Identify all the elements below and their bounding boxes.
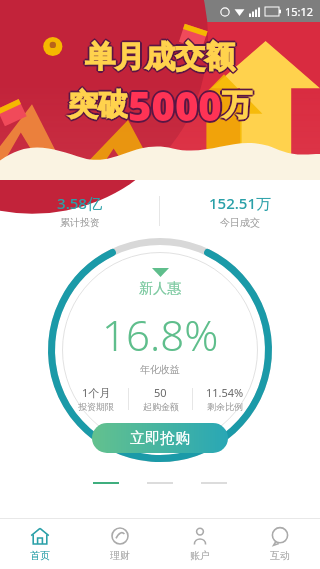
staticText: 5000	[128, 80, 222, 134]
staticText: 万	[222, 88, 252, 126]
staticText: 突破	[67, 85, 127, 123]
staticText: 5000	[128, 78, 222, 132]
staticText: 单月成交额	[85, 36, 235, 74]
staticText: 突破	[67, 87, 127, 125]
button[interactable]: 首页	[0, 519, 80, 569]
staticText: 单月成交额	[84, 39, 234, 77]
staticText: 起购金额	[143, 401, 179, 412]
staticText: 新人惠	[139, 280, 181, 298]
staticText: 理财	[110, 549, 130, 562]
staticText: 万	[223, 85, 253, 123]
staticText: 15:12	[285, 4, 314, 19]
staticText: 5000	[127, 77, 221, 131]
staticText: 突破	[68, 84, 128, 122]
staticText: 16.8%	[102, 306, 219, 363]
staticText: 突破	[70, 86, 130, 124]
staticText: 万	[222, 86, 252, 124]
staticText: 11.54%	[206, 385, 244, 400]
staticText: 互动	[270, 549, 290, 562]
staticText: 5000	[129, 77, 223, 131]
staticText: 5000	[127, 79, 221, 133]
staticText: 单月成交额	[87, 38, 237, 76]
staticText: 5000	[130, 78, 224, 132]
staticText: 突破	[69, 87, 129, 125]
staticText: 单月成交额	[85, 40, 235, 78]
staticText: 突破	[66, 86, 126, 124]
button[interactable]: 单月成交额	[0, 22, 320, 180]
staticText: 152.51万	[209, 193, 271, 213]
staticText: 万	[222, 84, 252, 122]
staticText: 5000	[128, 76, 222, 130]
staticText: 3.58亿	[57, 193, 102, 213]
button[interactable]: 立即抢购	[92, 423, 228, 453]
staticText: 万	[223, 87, 253, 125]
button[interactable]: 新人惠	[46, 236, 274, 464]
staticText: 单月成交额	[85, 38, 235, 76]
staticText: 立即抢购	[130, 429, 190, 448]
staticText: 单月成交额	[84, 37, 234, 75]
staticText: 万	[221, 85, 251, 123]
button[interactable]: 互动	[240, 519, 320, 569]
staticText: 投资期限	[78, 401, 114, 412]
staticText: 年化收益	[140, 363, 180, 376]
staticText: 单月成交额	[86, 37, 236, 75]
staticText: 5000	[126, 78, 220, 132]
staticText: 今日成交	[220, 216, 260, 229]
button[interactable]: 3.58亿	[0, 193, 159, 229]
staticText: 1个月	[82, 385, 111, 400]
staticText: 5000	[129, 79, 223, 133]
staticText: 万	[220, 86, 250, 124]
staticText: 万	[221, 87, 251, 125]
staticText: 突破	[69, 85, 129, 123]
staticText: 剩余比例	[207, 401, 243, 412]
staticText: 50	[154, 385, 167, 400]
staticText: 万	[224, 86, 254, 124]
staticText: 单月成交额	[86, 39, 236, 77]
staticText: 单月成交额	[83, 38, 233, 76]
staticText: 突破	[68, 86, 128, 124]
staticText: 突破	[68, 88, 128, 126]
button[interactable]: 理财	[80, 519, 160, 569]
button[interactable]: 152.51万	[160, 193, 320, 229]
staticText: 账户	[190, 549, 210, 562]
staticText: 首页	[30, 549, 50, 562]
button[interactable]: 账户	[160, 519, 240, 569]
staticText: 累计投资	[60, 216, 100, 229]
